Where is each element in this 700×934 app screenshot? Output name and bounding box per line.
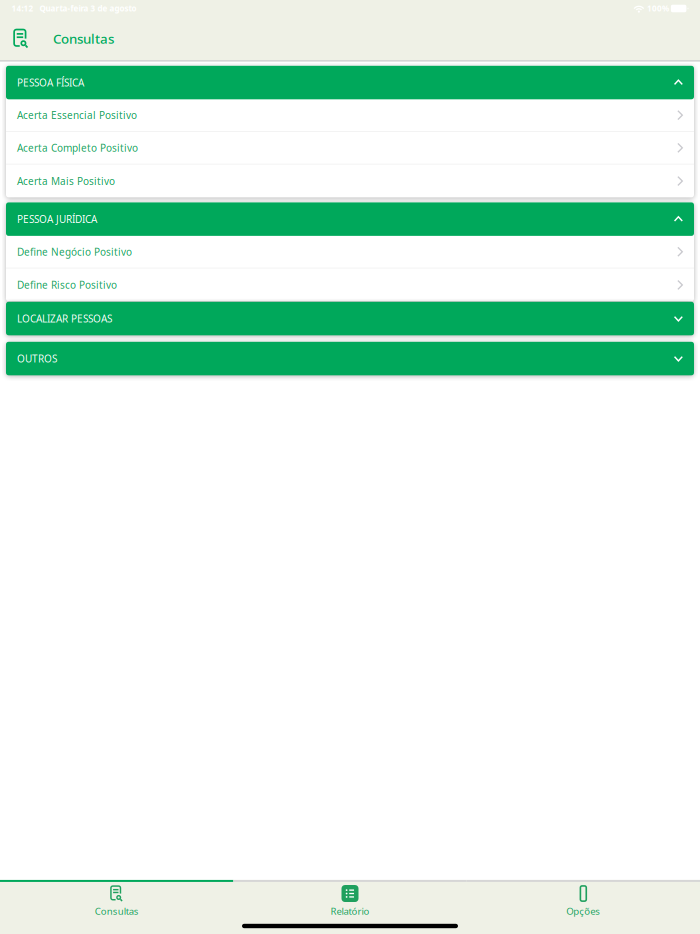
staticText: Relatório <box>330 904 369 917</box>
staticText: Define Negócio Positivo <box>17 245 132 258</box>
staticText: PESSOA FÍSICA <box>17 76 84 89</box>
staticText: Acerta Essencial Positivo <box>17 108 137 122</box>
button[interactable]: Acerta Mais Positivo <box>6 165 694 197</box>
button[interactable]: Consultas <box>8 18 34 58</box>
staticText: 100% <box>645 3 671 14</box>
staticText: Acerta Mais Positivo <box>17 174 115 188</box>
staticText: Opções <box>566 904 600 917</box>
button[interactable]: OUTROS <box>6 342 694 375</box>
button[interactable]: Relatório <box>233 880 467 917</box>
staticText: Acerta Completo Positivo <box>17 141 138 155</box>
button[interactable]: Opções <box>467 880 700 917</box>
staticText: PESSOA JURÍDICA <box>17 212 97 226</box>
staticText: OUTROS <box>17 352 57 365</box>
staticText: Consultas <box>53 29 114 48</box>
button[interactable]: Acerta Essencial Positivo <box>6 99 694 132</box>
button[interactable]: Consultas <box>0 880 233 917</box>
staticText: Define Risco Positivo <box>17 278 117 292</box>
button[interactable]: LOCALIZAR PESSOAS <box>6 302 694 335</box>
button[interactable]: PESSOA JURÍDICA <box>6 202 694 236</box>
staticText: Consultas <box>95 904 139 917</box>
button[interactable]: PESSOA FÍSICA <box>6 66 694 99</box>
staticText: Quarta-feira 3 de agosto <box>33 3 136 14</box>
staticText: LOCALIZAR PESSOAS <box>17 312 112 325</box>
button[interactable]: Acerta Completo Positivo <box>6 132 694 165</box>
button[interactable]: Define Negócio Positivo <box>6 236 694 269</box>
staticText: 14:12 <box>11 3 33 14</box>
button[interactable]: Define Risco Positivo <box>6 269 694 301</box>
